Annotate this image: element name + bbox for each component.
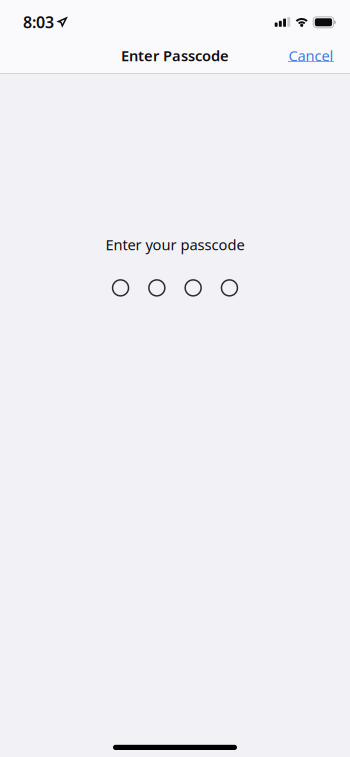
button[interactable]: Passcode	[102, 274, 247, 302]
staticText: Enter Passcode	[121, 46, 229, 65]
button[interactable]: Cancel	[280, 42, 342, 66]
staticText: Cancel	[288, 46, 333, 65]
staticText: Enter your passcode	[105, 235, 244, 254]
staticText: 8:03	[23, 11, 54, 33]
